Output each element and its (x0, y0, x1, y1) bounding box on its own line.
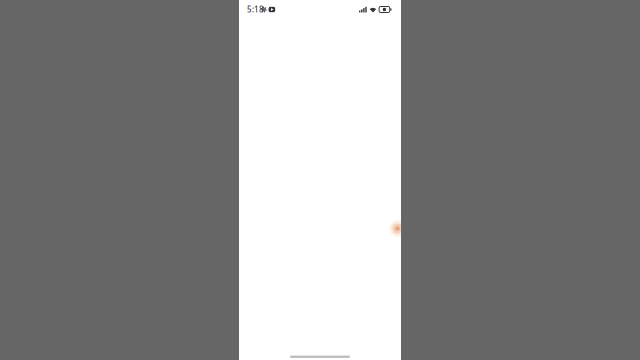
staticText: 5:18 (247, 4, 264, 15)
button[interactable]: Compose (389, 220, 406, 237)
